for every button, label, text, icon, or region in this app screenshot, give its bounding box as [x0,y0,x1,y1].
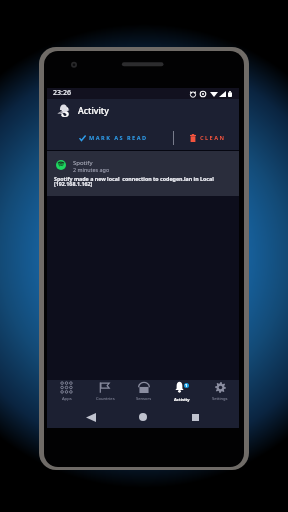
staticText: Apps [62,396,72,402]
button[interactable]: Recent apps [187,409,203,425]
staticText: Spotify made a new local connection to c… [54,175,214,182]
staticText: 23:26 [53,88,71,98]
button[interactable]: Spotify [47,151,239,196]
staticText: Activity [78,105,109,117]
button[interactable]: Apps [47,380,86,405]
staticText: 2 minutes ago [73,166,110,173]
staticText: [192.168.1.162] [54,180,93,187]
button[interactable]: MARK AS READ [73,129,154,146]
staticText: Countries [96,396,115,402]
button[interactable]: Settings [201,380,239,405]
staticText: Settings [212,396,228,402]
staticText: 1 [185,383,188,388]
staticText: MARK AS READ [89,134,148,142]
staticText: Spotify [73,159,93,167]
button[interactable]: Home [135,409,151,425]
staticText: Activity [174,397,190,403]
button[interactable]: CLEAN [184,129,232,146]
button[interactable]: Sensors [125,380,163,405]
staticText: CLEAN [200,134,226,142]
staticText: Sensors [136,396,152,402]
button[interactable]: Back [83,409,99,425]
button[interactable]: Countries [86,380,125,405]
staticText: S [61,102,70,120]
button[interactable]: 1 [163,380,201,405]
